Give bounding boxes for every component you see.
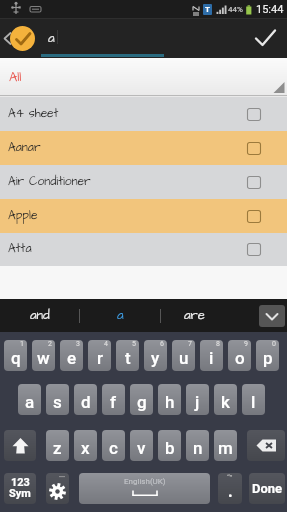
staticText: All bbox=[9, 68, 22, 86]
button[interactable]: q bbox=[4, 340, 27, 371]
button[interactable]: Select Atta bbox=[246, 242, 262, 257]
staticText: e bbox=[67, 348, 77, 368]
button[interactable]: Backspace bbox=[247, 430, 285, 461]
button[interactable]: Select Air Conditioner bbox=[246, 175, 262, 190]
button[interactable]: Aanar bbox=[0, 131, 287, 165]
button[interactable]: Shift bbox=[4, 430, 36, 461]
staticText: h bbox=[165, 392, 175, 412]
button[interactable]: a bbox=[18, 384, 41, 415]
staticText: 8 bbox=[216, 340, 220, 348]
staticText: 2 bbox=[48, 340, 52, 348]
button[interactable]: App logo bbox=[10, 26, 35, 51]
staticText: 123 bbox=[11, 476, 30, 489]
staticText: Sym bbox=[9, 487, 31, 500]
button[interactable]: l bbox=[242, 384, 265, 415]
button[interactable]: d bbox=[74, 384, 97, 415]
button[interactable]: v bbox=[130, 430, 153, 461]
staticText: i bbox=[209, 348, 214, 368]
staticText: r bbox=[97, 348, 103, 368]
staticText: a bbox=[48, 29, 55, 47]
button[interactable]: u bbox=[172, 340, 195, 371]
button[interactable]: Space bbox=[79, 473, 210, 504]
button[interactable]: Symbols bbox=[4, 473, 36, 504]
staticText: 9 bbox=[244, 340, 248, 348]
staticText: Done bbox=[252, 481, 283, 496]
button[interactable]: p bbox=[256, 340, 279, 371]
staticText: n bbox=[193, 438, 203, 458]
staticText: 44% bbox=[228, 5, 243, 14]
button[interactable]: g bbox=[130, 384, 153, 415]
staticText: 0 bbox=[272, 340, 276, 348]
button[interactable]: w bbox=[32, 340, 55, 371]
button[interactable]: Air Conditioner bbox=[0, 165, 287, 199]
button[interactable]: b bbox=[158, 430, 181, 461]
staticText: a bbox=[25, 392, 35, 412]
button[interactable]: Select A4 sheet bbox=[246, 107, 262, 122]
button[interactable]: A4 sheet bbox=[0, 97, 287, 131]
button[interactable]: z bbox=[46, 430, 69, 461]
staticText: p bbox=[263, 348, 273, 368]
staticText: . bbox=[228, 482, 233, 501]
staticText: g bbox=[137, 392, 147, 412]
staticText: 7 bbox=[188, 340, 192, 348]
button[interactable]: a bbox=[80, 299, 160, 332]
staticText: A4 sheet bbox=[8, 105, 246, 122]
button[interactable]: h bbox=[158, 384, 181, 415]
staticText: y bbox=[151, 348, 160, 368]
button[interactable]: Apple bbox=[0, 199, 287, 233]
button[interactable]: c bbox=[102, 430, 125, 461]
staticText: Atta bbox=[8, 240, 246, 257]
button[interactable]: and bbox=[0, 299, 79, 332]
button[interactable]: e bbox=[60, 340, 83, 371]
button[interactable]: j bbox=[186, 384, 209, 415]
staticText: ••• bbox=[59, 473, 66, 480]
staticText: q bbox=[11, 348, 21, 368]
staticText: f bbox=[110, 392, 117, 412]
staticText: v bbox=[137, 438, 146, 458]
button[interactable]: t bbox=[116, 340, 139, 371]
staticText: t bbox=[125, 348, 131, 368]
button[interactable]: Select Apple bbox=[246, 209, 262, 224]
button[interactable]: All bbox=[0, 58, 287, 97]
button[interactable]: i bbox=[200, 340, 223, 371]
button[interactable]: x bbox=[74, 430, 97, 461]
staticText: d bbox=[81, 392, 91, 412]
staticText: a bbox=[117, 306, 124, 324]
staticText: 4 bbox=[104, 340, 108, 348]
staticText: b bbox=[165, 438, 175, 458]
button[interactable]: Select Aanar bbox=[246, 141, 262, 156]
button[interactable]: Done bbox=[249, 473, 285, 504]
staticText: “” bbox=[227, 473, 233, 482]
button[interactable]: k bbox=[214, 384, 237, 415]
button[interactable]: Keyboard settings bbox=[46, 473, 69, 504]
button[interactable]: f bbox=[102, 384, 125, 415]
staticText: w bbox=[37, 348, 50, 368]
staticText: 1 bbox=[20, 340, 24, 348]
button[interactable]: Search field bbox=[41, 18, 164, 58]
button[interactable]: are bbox=[161, 299, 227, 332]
button[interactable]: n bbox=[186, 430, 209, 461]
button[interactable]: o bbox=[228, 340, 251, 371]
staticText: l bbox=[251, 392, 256, 412]
button[interactable]: More suggestions bbox=[259, 305, 285, 327]
staticText: j bbox=[195, 392, 200, 412]
staticText: Apple bbox=[8, 207, 246, 224]
staticText: x bbox=[81, 438, 90, 458]
button[interactable]: s bbox=[46, 384, 69, 415]
button[interactable]: y bbox=[144, 340, 167, 371]
button[interactable]: Atta bbox=[0, 233, 287, 266]
button[interactable]: Navigate up bbox=[1, 18, 14, 58]
button[interactable]: r bbox=[88, 340, 111, 371]
button[interactable]: m bbox=[214, 430, 237, 461]
staticText: 3 bbox=[76, 340, 80, 348]
staticText: English(UK) bbox=[124, 477, 166, 486]
staticText: and bbox=[30, 306, 50, 324]
staticText: z bbox=[53, 438, 62, 458]
staticText: 6 bbox=[160, 340, 164, 348]
button[interactable]: Period bbox=[218, 473, 242, 504]
staticText: c bbox=[109, 438, 118, 458]
staticText: k bbox=[221, 392, 230, 412]
button[interactable]: Confirm bbox=[243, 18, 287, 58]
staticText: T bbox=[205, 5, 210, 14]
staticText: Air Conditioner bbox=[8, 173, 246, 190]
